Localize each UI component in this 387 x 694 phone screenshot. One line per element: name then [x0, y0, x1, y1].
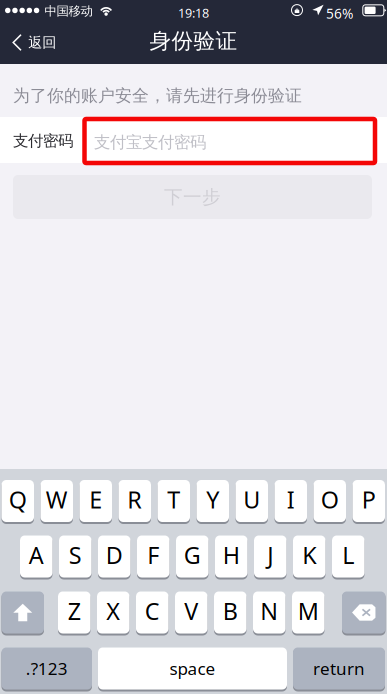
button[interactable]: B	[214, 591, 246, 635]
staticText: Z	[68, 595, 81, 627]
staticText: Y	[206, 484, 219, 515]
button[interactable]: F	[137, 535, 169, 579]
staticText: K	[302, 539, 316, 571]
staticText: I	[287, 484, 295, 515]
staticText: T	[167, 484, 180, 515]
staticText: H	[223, 539, 240, 571]
button[interactable]: M	[292, 591, 324, 635]
staticText: 下一步	[164, 185, 221, 209]
button[interactable]: W	[40, 479, 73, 523]
staticText: C	[145, 595, 160, 627]
staticText: X	[106, 595, 120, 627]
button[interactable]: U	[235, 479, 268, 523]
button[interactable]: K	[293, 535, 325, 579]
staticText: 为了你的账户安全，请先进行身份验证	[13, 85, 302, 106]
button[interactable]: Delete	[342, 591, 385, 635]
button[interactable]: X	[97, 591, 129, 635]
staticText: B	[223, 595, 238, 627]
button[interactable]: R	[118, 479, 151, 523]
button[interactable]: Shift	[1, 591, 44, 635]
staticText: 支付宝支付密码	[94, 132, 206, 153]
button[interactable]: D	[98, 535, 130, 579]
staticText: space	[169, 657, 215, 680]
button[interactable]: Z	[58, 591, 90, 635]
staticText: 56%	[326, 4, 353, 23]
button[interactable]: P	[352, 479, 385, 523]
button[interactable]: 返回	[0, 21, 70, 64]
button[interactable]: N	[253, 591, 285, 635]
staticText: 身份验证	[149, 27, 237, 55]
staticText: O	[321, 484, 339, 515]
button[interactable]: H	[215, 535, 247, 579]
button[interactable]: G	[176, 535, 208, 579]
staticText: return	[313, 657, 365, 680]
staticText: .?123	[26, 657, 68, 680]
button[interactable]: E	[79, 479, 112, 523]
staticText: S	[69, 539, 82, 571]
staticText: G	[184, 539, 201, 571]
staticText: D	[106, 539, 123, 571]
staticText: L	[342, 539, 354, 571]
button[interactable]: A	[20, 535, 52, 579]
button[interactable]: L	[332, 535, 364, 579]
staticText: E	[89, 484, 102, 515]
staticText: 中国移动	[44, 3, 92, 19]
staticText: 支付密码	[13, 131, 73, 150]
button[interactable]: C	[136, 591, 168, 635]
staticText: J	[267, 539, 273, 571]
button[interactable]: V	[175, 591, 207, 635]
button[interactable]: Y	[196, 479, 229, 523]
button[interactable]: O	[313, 479, 346, 523]
staticText: 19:18	[178, 4, 209, 22]
staticText: U	[243, 484, 260, 515]
staticText: N	[260, 595, 278, 627]
button[interactable]: Q	[1, 479, 34, 523]
staticText: A	[29, 539, 44, 571]
button[interactable]: return	[293, 647, 385, 691]
staticText: R	[127, 484, 142, 515]
staticText: M	[298, 595, 319, 627]
staticText: W	[46, 484, 68, 515]
button[interactable]: .?123	[1, 647, 92, 691]
button[interactable]: I	[274, 479, 307, 523]
button[interactable]: space	[98, 647, 287, 691]
button[interactable]: S	[59, 535, 91, 579]
staticText: V	[184, 595, 198, 627]
button[interactable]: T	[157, 479, 190, 523]
staticText: Q	[9, 484, 27, 515]
staticText: P	[362, 484, 376, 515]
button[interactable]: J	[254, 535, 286, 579]
staticText: F	[147, 539, 159, 571]
staticText: 返回	[28, 34, 56, 51]
